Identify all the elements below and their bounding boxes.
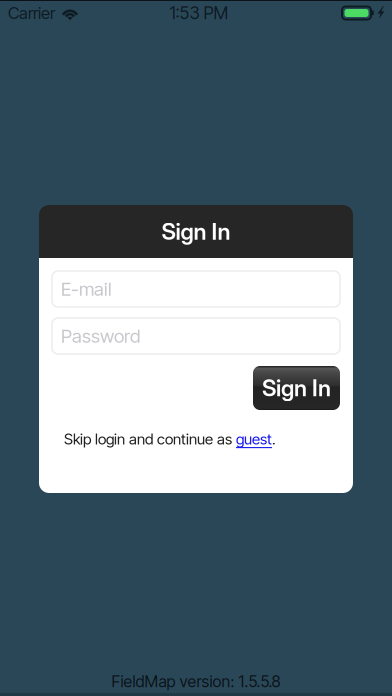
- staticText: FieldMap version: 1.5.5.8: [111, 672, 280, 691]
- staticText: Skip login and continue as: [64, 430, 236, 448]
- staticText: guest: [236, 430, 272, 448]
- staticText: Carrier: [8, 3, 55, 23]
- staticText: Password: [61, 325, 140, 347]
- staticText: Sign In: [262, 374, 331, 402]
- button[interactable]: guest: [236, 430, 272, 448]
- button[interactable]: Sign In: [253, 366, 340, 410]
- staticText: E-mail: [61, 278, 112, 300]
- staticText: Sign In: [161, 218, 230, 245]
- staticText: 1:53 PM: [169, 2, 228, 23]
- staticText: .: [272, 430, 276, 448]
